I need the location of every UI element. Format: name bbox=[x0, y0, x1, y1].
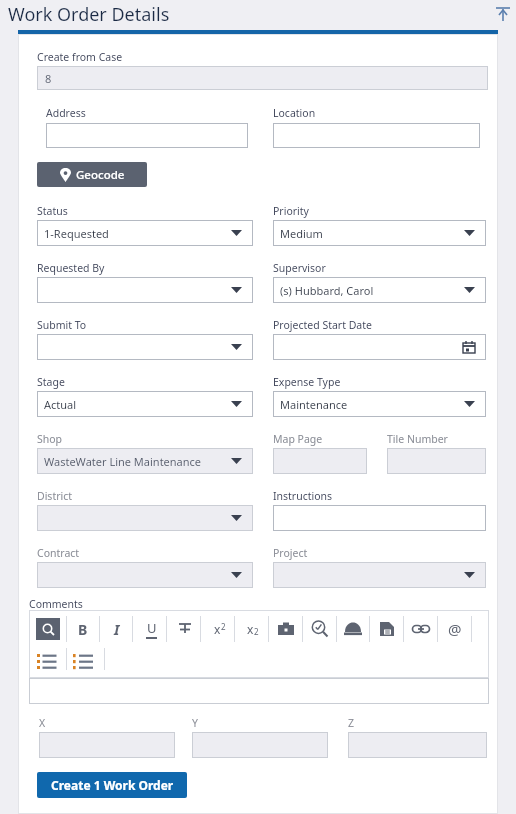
button[interactable]: Underline bbox=[140, 618, 162, 640]
staticText: Status bbox=[37, 204, 68, 218]
button[interactable]: Create 1 Work Order bbox=[37, 772, 187, 798]
staticText: Requested By bbox=[37, 261, 105, 275]
staticText: Priority bbox=[273, 204, 309, 218]
staticText: Map Page bbox=[273, 432, 323, 446]
button[interactable]: WasteWater Line Maintenance bbox=[37, 448, 253, 474]
button[interactable]: Location bbox=[273, 123, 480, 148]
button[interactable]: Insert link bbox=[409, 617, 433, 641]
staticText: I bbox=[114, 620, 120, 639]
button[interactable]: Select bbox=[37, 505, 253, 531]
staticText: Comments bbox=[29, 597, 83, 611]
button[interactable]: Work order bbox=[341, 617, 365, 641]
staticText: Work Order Details bbox=[8, 2, 170, 27]
button[interactable]: Disabled field bbox=[37, 66, 488, 90]
button[interactable]: Disabled field bbox=[387, 448, 486, 474]
staticText: 8 bbox=[45, 71, 52, 86]
staticText: Project bbox=[273, 546, 308, 560]
staticText: Projected Start Date bbox=[273, 318, 372, 332]
staticText: Y bbox=[192, 716, 198, 730]
button[interactable]: Medium bbox=[273, 220, 486, 246]
staticText: Instructions bbox=[273, 489, 333, 503]
staticText: Tile Number bbox=[387, 432, 448, 446]
staticText: District bbox=[37, 489, 73, 503]
staticText: WasteWater Line Maintenance bbox=[44, 454, 202, 469]
staticText: Expense Type bbox=[273, 375, 341, 389]
button[interactable]: Mention bbox=[443, 617, 467, 641]
button[interactable]: Geocode bbox=[37, 162, 147, 187]
staticText: Supervisor bbox=[273, 261, 326, 275]
staticText: 1-Requested bbox=[44, 226, 109, 241]
button[interactable]: Pin panel bbox=[494, 4, 512, 24]
button[interactable]: Superscript bbox=[208, 618, 232, 640]
button[interactable]: Comments text bbox=[29, 678, 489, 704]
staticText: B bbox=[78, 620, 88, 639]
button[interactable]: Subscript bbox=[241, 618, 265, 640]
staticText: Submit To bbox=[37, 318, 87, 332]
staticText: Medium bbox=[280, 226, 323, 241]
staticText: Shop bbox=[37, 432, 63, 446]
staticText: X bbox=[39, 716, 46, 730]
staticText: Contract bbox=[37, 546, 80, 560]
staticText: 2 bbox=[254, 626, 259, 637]
staticText: Geocode bbox=[76, 167, 125, 183]
staticText: Stage bbox=[37, 375, 65, 389]
staticText: Address bbox=[46, 106, 86, 120]
button[interactable]: Maintenance bbox=[273, 391, 486, 417]
button[interactable]: Disabled field bbox=[39, 732, 175, 758]
button[interactable]: Address bbox=[46, 123, 248, 148]
button[interactable]: Asset bbox=[274, 617, 298, 641]
button[interactable]: Select bbox=[37, 562, 253, 588]
button[interactable]: Select bbox=[37, 334, 253, 360]
button[interactable]: Disabled field bbox=[192, 732, 328, 758]
button[interactable]: Bold bbox=[72, 618, 94, 640]
button[interactable]: Find bbox=[36, 618, 60, 640]
button[interactable]: Actual bbox=[37, 391, 253, 417]
button[interactable]: Meter bbox=[375, 617, 399, 641]
button[interactable]: Select bbox=[273, 562, 486, 588]
staticText: x bbox=[214, 621, 221, 637]
button[interactable]: Disabled field bbox=[273, 448, 367, 474]
staticText: (s) Hubbard, Carol bbox=[280, 283, 374, 298]
button[interactable]: Instructions bbox=[273, 505, 486, 531]
staticText: Maintenance bbox=[280, 397, 348, 412]
button[interactable]: Inspection bbox=[308, 617, 332, 641]
staticText: @ bbox=[448, 619, 462, 639]
button[interactable]: Strikethrough bbox=[174, 618, 196, 640]
staticText: Create 1 Work Order bbox=[51, 777, 174, 793]
button[interactable]: Disabled field bbox=[348, 732, 487, 758]
staticText: Z bbox=[348, 716, 355, 730]
staticText: x bbox=[247, 621, 254, 637]
staticText: Location bbox=[273, 106, 316, 120]
button[interactable]: Projected Start Date bbox=[273, 334, 486, 360]
button[interactable]: Italic bbox=[106, 618, 128, 640]
button[interactable]: Numbered list bbox=[72, 650, 98, 670]
button[interactable]: Select bbox=[37, 277, 253, 303]
staticText: U bbox=[147, 619, 157, 637]
button[interactable]: 1-Requested bbox=[37, 220, 253, 246]
staticText: Create from Case bbox=[37, 50, 123, 64]
button[interactable]: Bulleted list bbox=[36, 650, 60, 670]
button[interactable]: (s) Hubbard, Carol bbox=[273, 277, 486, 303]
staticText: 2 bbox=[221, 621, 226, 632]
staticText: Actual bbox=[44, 397, 77, 412]
